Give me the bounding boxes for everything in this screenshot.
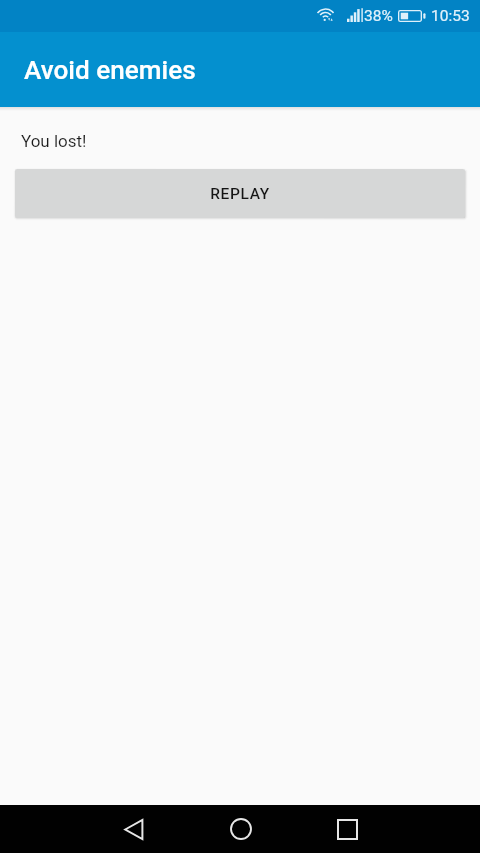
staticText: 10:53 [431,7,470,25]
staticText: You lost! [21,131,87,151]
button[interactable]: Recent apps [294,805,401,853]
button[interactable]: Back [80,805,187,853]
button[interactable]: Home [187,805,294,853]
staticText: REPLAY [210,185,270,203]
button[interactable]: REPLAY [15,169,465,218]
staticText: Avoid enemies [24,55,196,86]
staticText: 38% [364,7,393,25]
